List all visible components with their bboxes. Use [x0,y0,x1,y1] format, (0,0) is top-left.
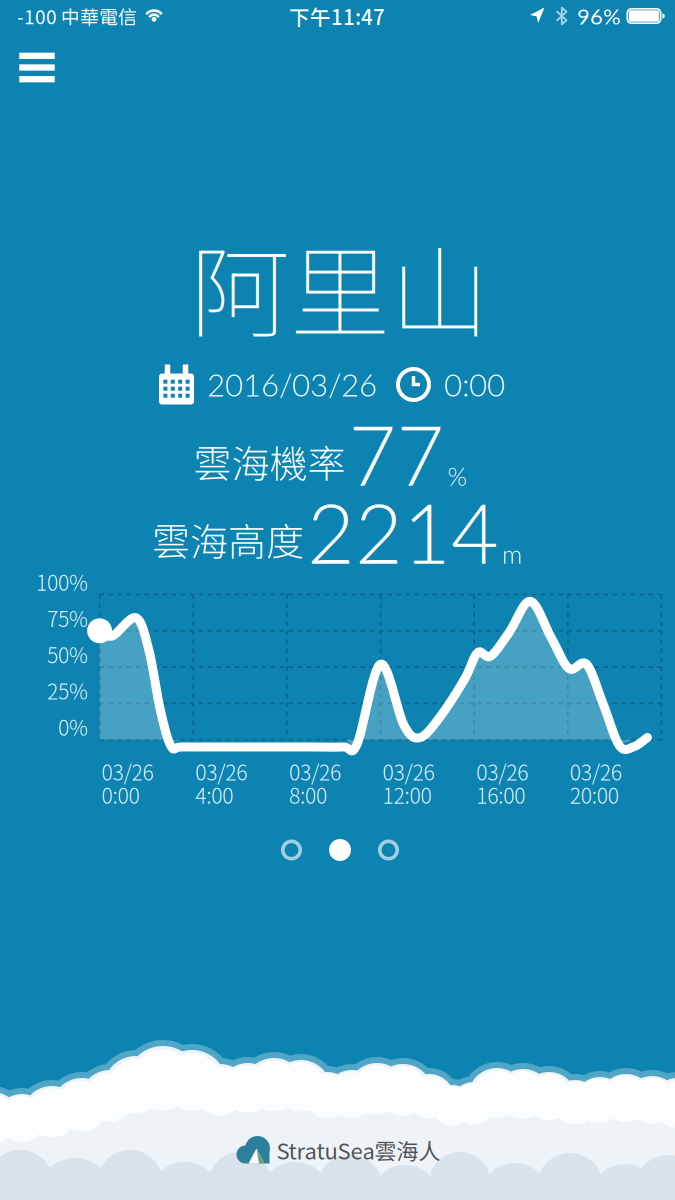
button[interactable]: Page 3 [374,835,403,864]
button[interactable]: Menu [11,45,63,90]
staticText: 25% [47,675,88,706]
staticText: 下午11:47 [289,1,385,31]
staticText: 12:00 [382,779,431,810]
staticText: 2016/03/26 [207,366,377,403]
staticText: 0% [58,711,88,742]
staticText: 雲海高度 [152,512,304,567]
staticText: 0:00 [444,366,505,403]
button[interactable]: Page 2 [325,835,355,865]
staticText: 96% [577,3,621,29]
staticText: 100% [36,566,88,597]
staticText: 03/26 [382,756,434,786]
staticText: m [502,539,522,569]
staticText: -100 中華電信 [17,2,137,30]
staticText: 77 [348,405,444,503]
button[interactable]: Choose date and time [159,364,505,404]
staticText: 03/26 [289,756,341,786]
button[interactable]: Page 1 [277,835,306,864]
staticText: 03/26 [102,756,154,786]
staticText: 03/26 [570,756,622,786]
staticText: 0:00 [102,779,140,810]
staticText: 雲海機率 [193,434,345,489]
staticText: 16:00 [476,779,525,810]
staticText: 阿里山 [190,214,490,358]
staticText: 4:00 [195,779,233,810]
staticText: 8:00 [289,779,327,810]
staticText: 2214 [307,483,499,581]
staticText: 50% [47,639,88,669]
staticText: 03/26 [195,756,247,786]
staticText: 03/26 [476,756,528,786]
staticText: StratuSea雲海人 [276,1134,440,1166]
staticText: % [447,461,466,491]
staticText: 20:00 [570,779,619,810]
staticText: 75% [47,603,88,633]
